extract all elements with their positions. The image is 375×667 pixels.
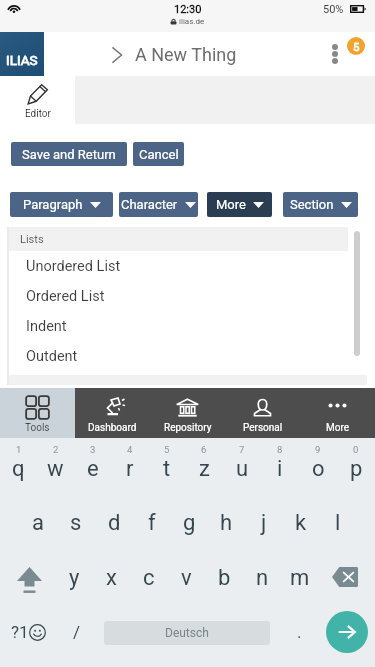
staticText: More — [326, 422, 350, 434]
button[interactable]: 4 — [111, 442, 148, 484]
button[interactable]: c — [130, 560, 167, 602]
button[interactable]: Indent — [9, 311, 367, 341]
button[interactable]: g — [171, 506, 208, 544]
staticText: v — [181, 565, 192, 591]
button[interactable]: Dashboard — [75, 388, 150, 438]
staticText: Indent — [26, 318, 67, 335]
button[interactable]: Cancel — [133, 142, 184, 166]
button[interactable]: 2 — [37, 442, 74, 484]
staticText: Unordered List — [26, 258, 121, 275]
staticText: q — [12, 456, 25, 482]
staticText: 5 — [164, 444, 170, 455]
button[interactable]: a — [19, 506, 57, 544]
staticText: Ordered List — [26, 288, 105, 305]
button[interactable]: Backspace — [319, 560, 375, 602]
staticText: f — [148, 510, 156, 536]
button[interactable]: 5 — [148, 442, 185, 484]
button[interactable]: More options — [326, 41, 344, 67]
staticText: u — [236, 456, 249, 482]
button[interactable]: x — [93, 560, 130, 602]
button[interactable]: b — [205, 560, 243, 602]
button[interactable]: s — [57, 506, 95, 544]
staticText: 1 — [16, 444, 22, 455]
button[interactable]: Unordered List — [9, 251, 367, 281]
button[interactable]: Save and Return — [11, 142, 127, 166]
button[interactable]: 8 — [261, 442, 299, 484]
staticText: p — [350, 456, 363, 482]
button[interactable]: Character — [119, 192, 198, 217]
staticText: 5 — [353, 40, 360, 53]
staticText: Outdent — [26, 348, 78, 365]
staticText: Editor — [25, 108, 51, 120]
button[interactable]: h — [208, 506, 245, 544]
staticText: 50% — [323, 3, 344, 16]
button[interactable]: 0 — [337, 442, 375, 484]
button[interactable]: k — [282, 506, 319, 544]
button[interactable]: Section — [283, 192, 358, 217]
button[interactable]: n — [243, 560, 281, 602]
button[interactable]: l — [319, 506, 356, 544]
staticText: d — [108, 510, 121, 536]
staticText: 3 — [90, 444, 96, 455]
staticText: 2 — [53, 444, 59, 455]
staticText: j — [261, 510, 267, 536]
button[interactable]: Personal — [225, 388, 300, 438]
button[interactable]: Send — [326, 611, 368, 653]
staticText: r — [126, 456, 134, 482]
button[interactable]: Ordered List — [9, 281, 367, 311]
button[interactable]: 5 — [347, 37, 365, 55]
button[interactable]: Editor — [0, 76, 75, 124]
button[interactable]: / — [66, 614, 88, 650]
staticText: t — [163, 456, 171, 482]
staticText: Cancel — [139, 147, 179, 162]
button[interactable]: . — [288, 614, 310, 650]
button[interactable]: 6 — [185, 442, 223, 484]
staticText: z — [199, 456, 210, 482]
button[interactable]: ?1 — [11, 622, 46, 642]
button[interactable]: A New Thing — [111, 44, 237, 65]
button[interactable]: j — [245, 506, 282, 544]
button[interactable]: v — [167, 560, 205, 602]
staticText: 12:30 — [174, 3, 202, 16]
staticText: x — [106, 565, 117, 591]
staticText: l — [335, 510, 341, 536]
button[interactable]: y — [56, 560, 93, 602]
button[interactable]: Repository — [150, 388, 225, 438]
button[interactable]: Tools — [0, 388, 75, 438]
button[interactable]: Deutsch — [104, 621, 270, 645]
button[interactable]: Paragraph — [10, 192, 113, 217]
staticText: . — [297, 622, 302, 642]
button[interactable]: More — [207, 192, 272, 217]
staticText: b — [218, 565, 231, 591]
staticText: s — [70, 510, 82, 536]
staticText: a — [32, 510, 44, 536]
staticText: Repository — [164, 422, 212, 434]
staticText: Paragraph — [23, 197, 83, 212]
staticText: Section — [290, 197, 334, 212]
staticText: ilias.de — [179, 17, 205, 26]
staticText: k — [295, 510, 307, 536]
button[interactable]: 3 — [74, 442, 111, 484]
staticText: 4 — [127, 444, 133, 455]
button[interactable]: 9 — [299, 442, 337, 484]
button[interactable]: d — [95, 506, 133, 544]
button[interactable]: ILIAS — [0, 32, 44, 76]
staticText: m — [290, 565, 310, 591]
staticText: 7 — [239, 444, 245, 455]
button[interactable]: More — [300, 388, 375, 438]
button[interactable]: 1 — [0, 442, 37, 484]
button[interactable]: Shift — [0, 560, 56, 602]
staticText: ?1 — [11, 622, 29, 642]
button[interactable]: f — [133, 506, 171, 544]
staticText: 6 — [201, 444, 207, 455]
staticText: w — [47, 456, 64, 482]
button[interactable]: m — [281, 560, 319, 602]
button[interactable]: 7 — [223, 442, 261, 484]
staticText: Character — [121, 197, 178, 212]
button[interactable]: Outdent — [9, 341, 367, 371]
staticText: i — [277, 456, 283, 482]
staticText: ILIAS — [6, 52, 38, 68]
staticText: More — [216, 197, 246, 212]
staticText: Personal — [243, 422, 283, 434]
staticText: y — [69, 565, 80, 591]
